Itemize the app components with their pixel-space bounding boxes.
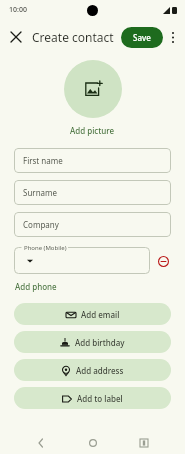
button[interactable]: Back xyxy=(30,432,52,454)
staticText: Phone (Mobile) xyxy=(24,244,67,252)
button[interactable]: Add to label xyxy=(14,387,171,409)
staticText: Surname xyxy=(23,187,58,198)
button[interactable] xyxy=(14,247,150,274)
staticText: Add picture xyxy=(70,125,115,136)
staticText: Add phone xyxy=(15,281,57,292)
button[interactable]: Add address xyxy=(14,359,171,381)
button[interactable]: Surname xyxy=(14,180,171,205)
staticText: Add address xyxy=(76,365,124,376)
staticText: Add to label xyxy=(77,393,123,404)
button[interactable]: Add phone xyxy=(14,280,58,293)
staticText: Save xyxy=(133,32,151,43)
button[interactable]: Company xyxy=(14,212,171,237)
staticText: First name xyxy=(23,155,63,166)
button[interactable]: Add birthday xyxy=(14,331,171,353)
button[interactable]: Home xyxy=(82,432,104,454)
staticText: Add email xyxy=(81,309,120,320)
button[interactable]: First name xyxy=(14,148,171,173)
staticText: 10:00 xyxy=(9,5,27,15)
button[interactable]: Close xyxy=(4,25,28,49)
button[interactable]: Add email xyxy=(14,303,171,325)
button[interactable]: Recent apps xyxy=(133,432,155,454)
button[interactable]: Remove phone xyxy=(155,253,171,269)
button[interactable]: Save xyxy=(121,27,163,48)
button[interactable]: More options xyxy=(163,27,183,47)
staticText: Company xyxy=(23,219,59,230)
staticText: Add birthday xyxy=(75,337,125,348)
button[interactable]: Add picture xyxy=(64,60,122,118)
staticText: Create contact xyxy=(32,29,114,45)
